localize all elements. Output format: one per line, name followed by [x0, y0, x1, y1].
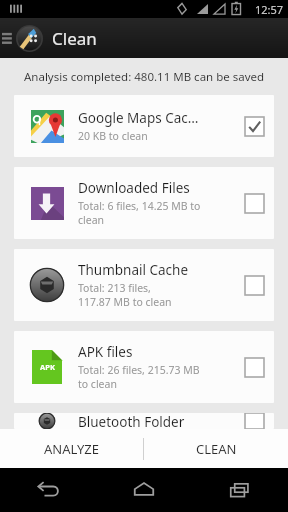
- staticText: Total: 26 files, 215.73 MB: [78, 363, 200, 377]
- button[interactable]: Downloaded Files: [14, 167, 274, 239]
- staticText: Bluetooth Folder: [78, 413, 185, 429]
- staticText: APK files: [78, 343, 133, 361]
- button[interactable]: Recent apps: [192, 468, 288, 512]
- button[interactable]: Back: [0, 468, 96, 512]
- staticText: Analysis completed: 480.11 MB can be sav…: [24, 69, 265, 85]
- staticText: to clean: [78, 377, 117, 391]
- staticText: APK: [40, 362, 55, 372]
- staticText: CLEAN: [196, 440, 237, 458]
- staticText: Clean: [52, 27, 97, 50]
- staticText: clean: [78, 213, 105, 227]
- button[interactable]: Not selected: [236, 413, 272, 429]
- button[interactable]: Open navigation drawer: [0, 18, 46, 58]
- button[interactable]: ANALYZE: [0, 429, 143, 468]
- button[interactable]: Home: [96, 468, 192, 512]
- button[interactable]: Thumbnail Cache: [14, 249, 274, 321]
- staticText: ANALYZE: [44, 440, 99, 458]
- button[interactable]: Bluetooth Folder: [14, 413, 274, 429]
- button[interactable]: Selected: [236, 108, 272, 144]
- staticText: Total: 213 files,: [78, 281, 151, 295]
- staticText: Thumbnail Cache: [78, 261, 189, 279]
- button[interactable]: Google Maps Cac…: [14, 95, 274, 157]
- staticText: 117.87 MB to clean: [78, 295, 172, 309]
- staticText: 20 KB to clean: [78, 129, 148, 143]
- staticText: Google Maps Cac…: [78, 109, 199, 127]
- staticText: 12:57: [255, 2, 284, 17]
- button[interactable]: Not selected: [236, 267, 272, 303]
- button[interactable]: CLEAN: [144, 429, 288, 468]
- staticText: Downloaded Files: [78, 179, 190, 197]
- button[interactable]: Not selected: [236, 185, 272, 221]
- button[interactable]: Not selected: [236, 349, 272, 385]
- button[interactable]: APK: [14, 331, 274, 403]
- staticText: Total: 6 files, 14.25 MB to: [78, 199, 201, 213]
